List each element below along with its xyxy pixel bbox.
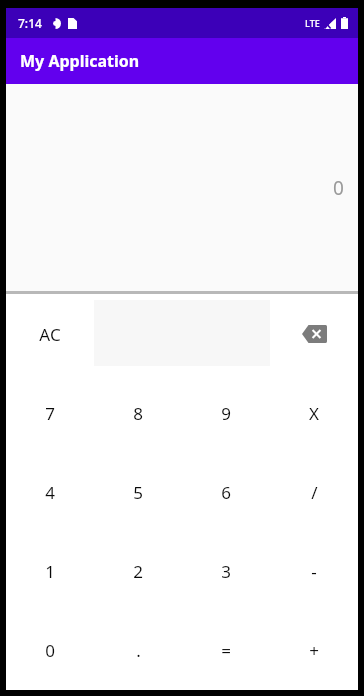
button[interactable]: 8 <box>94 374 182 453</box>
button[interactable]: Backspace <box>270 294 358 374</box>
button[interactable]: 7 <box>6 374 94 453</box>
button[interactable]: . <box>94 611 182 690</box>
staticText: 9 <box>221 402 231 425</box>
staticText: 7:14 <box>18 15 42 31</box>
button[interactable]: 6 <box>182 453 270 532</box>
staticText: 6 <box>221 481 231 504</box>
staticText: 3 <box>221 560 231 583</box>
button[interactable]: 5 <box>94 453 182 532</box>
button[interactable]: 3 <box>182 532 270 611</box>
staticText: 2 <box>133 560 143 583</box>
button[interactable]: / <box>270 453 358 532</box>
button[interactable]: + <box>270 611 358 690</box>
button[interactable]: 1 <box>6 532 94 611</box>
button[interactable]: X <box>270 374 358 453</box>
button[interactable]: AC <box>6 294 94 374</box>
button[interactable]: 2 <box>94 532 182 611</box>
staticText: 5 <box>133 481 143 504</box>
staticText: . <box>136 639 141 662</box>
staticText: + <box>309 639 319 662</box>
staticText: 4 <box>45 481 55 504</box>
button[interactable]: 4 <box>6 453 94 532</box>
staticText: 7 <box>45 402 55 425</box>
staticText: 8 <box>133 402 143 425</box>
staticText: AC <box>39 323 61 346</box>
staticText: - <box>311 560 317 583</box>
button[interactable]: = <box>182 611 270 690</box>
button[interactable]: 0 <box>6 611 94 690</box>
staticText: LTE <box>305 17 320 29</box>
button[interactable]: - <box>270 532 358 611</box>
staticText: / <box>311 481 318 504</box>
staticText: 0 <box>333 175 344 201</box>
button[interactable]: 9 <box>182 374 270 453</box>
staticText: X <box>309 402 319 425</box>
staticText: 1 <box>45 560 55 583</box>
staticText: = <box>221 639 231 662</box>
staticText: 0 <box>45 639 55 662</box>
staticText: My Application <box>20 50 140 72</box>
